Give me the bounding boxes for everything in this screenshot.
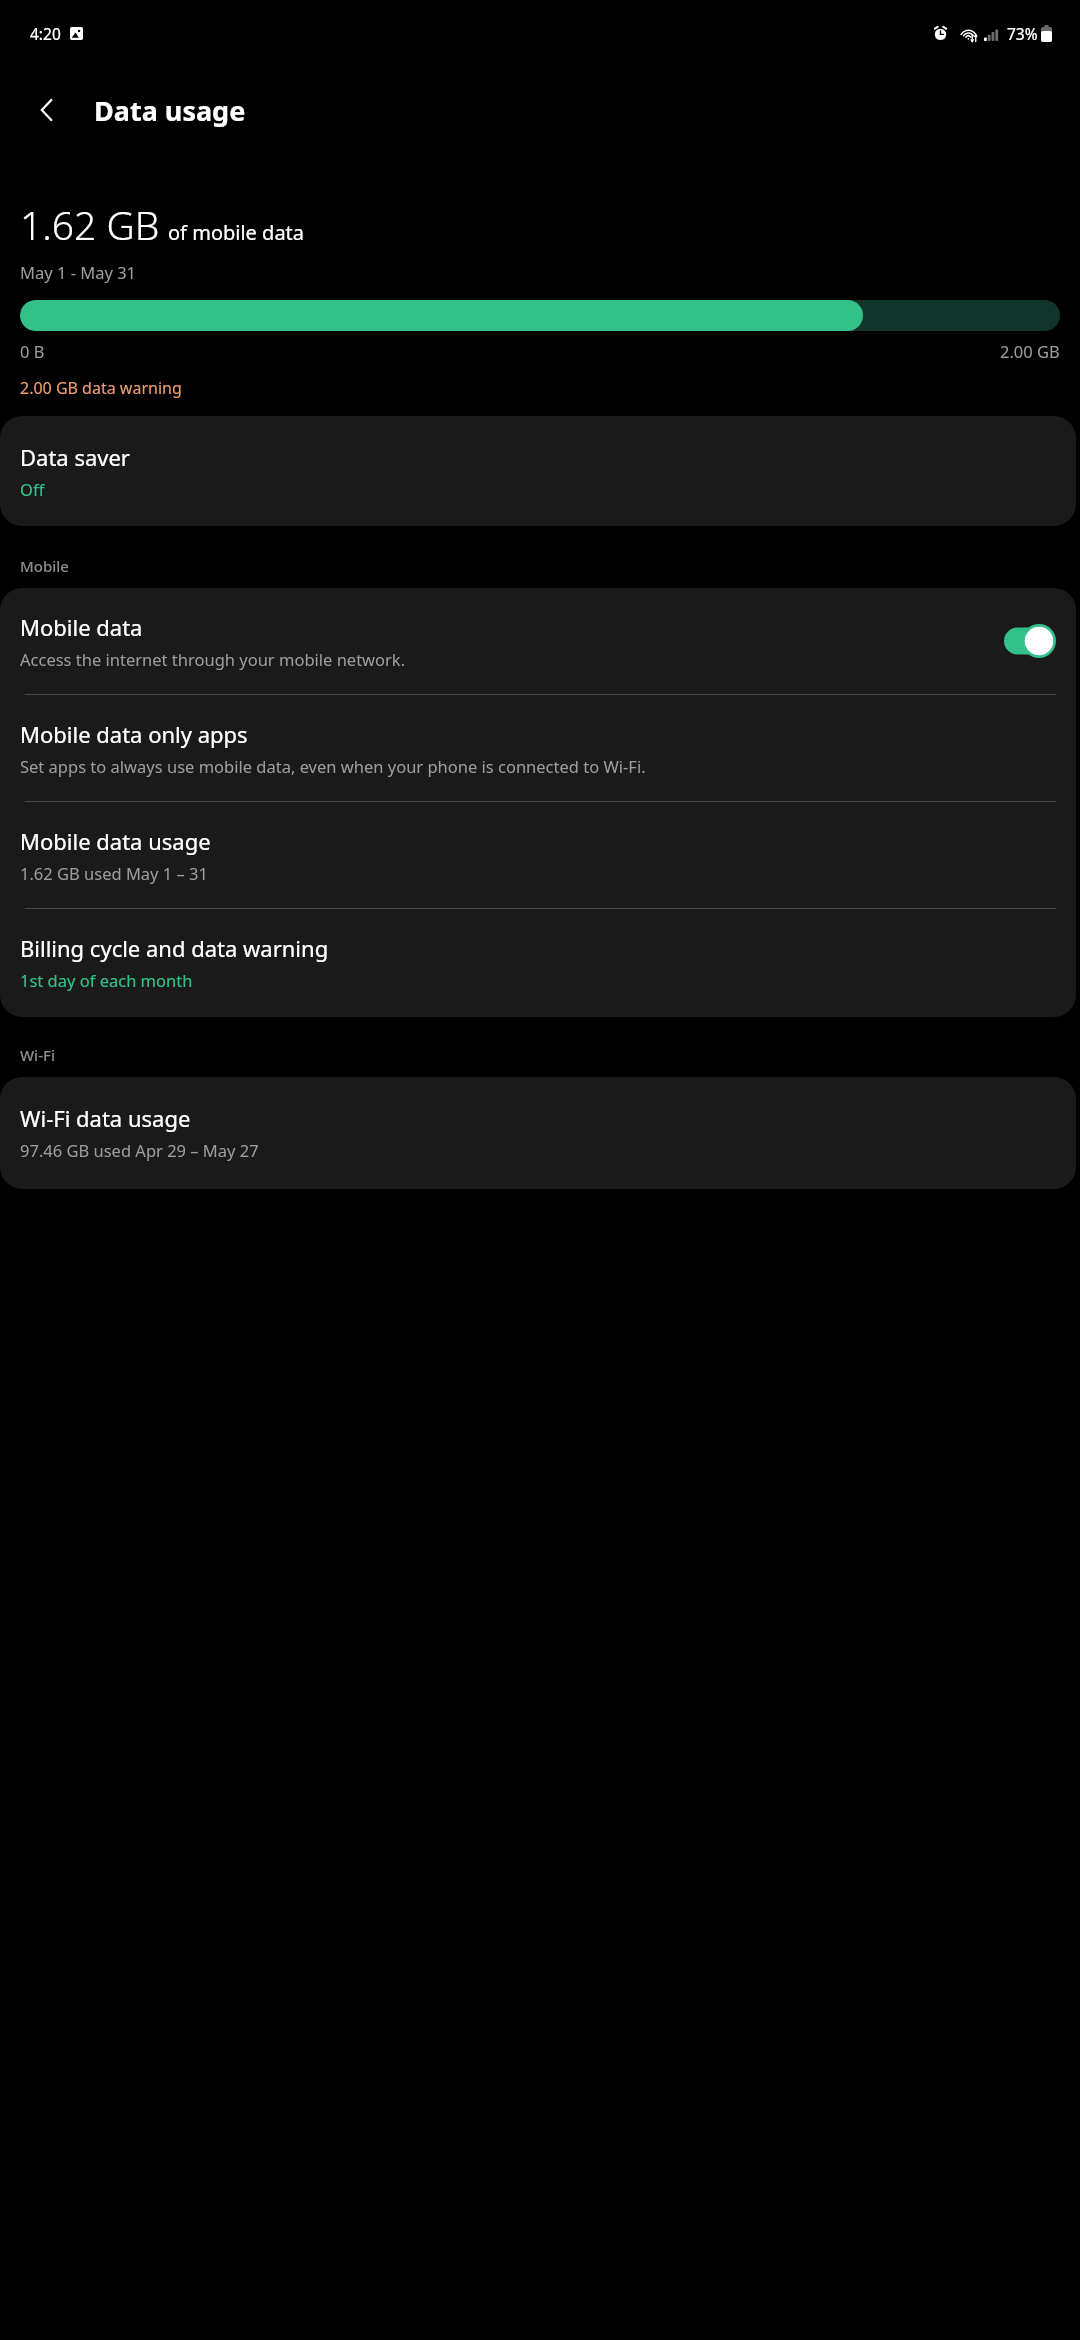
staticText: 2.00 GB data warning <box>20 377 182 399</box>
button[interactable]: Billing cycle and data warning <box>0 909 1076 1017</box>
staticText: 1.62 GB <box>20 198 160 251</box>
staticText: Access the internet through your mobile … <box>20 648 406 670</box>
staticText: Data saver <box>20 442 130 472</box>
staticText: Mobile data usage <box>20 826 211 856</box>
button[interactable]: Mobile data toggle, on <box>1004 624 1056 658</box>
staticText: 73% <box>1007 23 1038 44</box>
staticText: Data usage <box>94 92 246 129</box>
button[interactable]: Wi-Fi data usage <box>0 1077 1076 1189</box>
staticText: 1.62 GB used May 1 – 31 <box>20 862 208 884</box>
button[interactable]: Data saver <box>0 416 1076 526</box>
button[interactable]: Back <box>18 81 76 139</box>
staticText: Billing cycle and data warning <box>20 933 329 963</box>
staticText: Set apps to always use mobile data, even… <box>20 755 646 777</box>
button[interactable]: Mobile data usage <box>0 802 1076 908</box>
staticText: Mobile data <box>20 612 143 642</box>
staticText: May 1 - May 31 <box>20 261 137 283</box>
staticText: 1st day of each month <box>20 969 193 991</box>
staticText: Mobile data only apps <box>20 719 248 749</box>
button[interactable]: Mobile data only apps <box>0 695 1076 801</box>
button[interactable]: Mobile data <box>0 588 1076 694</box>
staticText: Mobile <box>20 556 69 576</box>
staticText: 97.46 GB used Apr 29 – May 27 <box>20 1139 259 1161</box>
staticText: Wi-Fi data usage <box>20 1103 191 1133</box>
staticText: Wi-Fi <box>20 1045 55 1065</box>
staticText: of mobile data <box>168 219 305 246</box>
staticText: 4:20 <box>30 23 61 44</box>
staticText: Off <box>20 478 45 500</box>
staticText: 0 B <box>20 340 45 362</box>
staticText: 2.00 GB <box>1000 340 1060 362</box>
